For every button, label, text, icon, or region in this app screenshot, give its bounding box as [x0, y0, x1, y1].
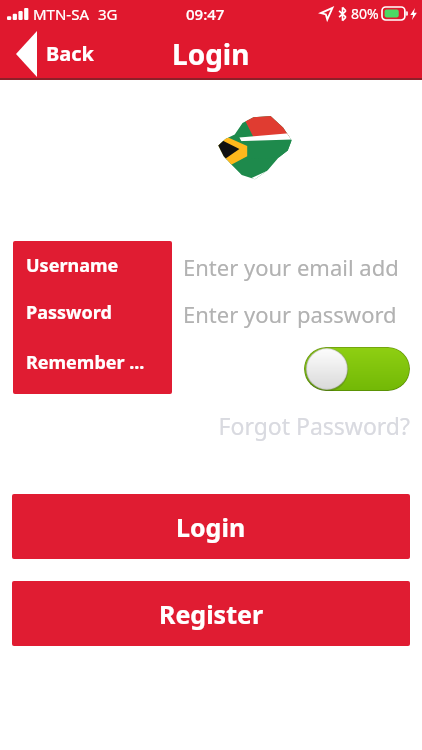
- button[interactable]: Remember me toggle: [304, 347, 410, 391]
- staticText: Login: [176, 510, 246, 544]
- button[interactable]: Login: [12, 494, 410, 559]
- button[interactable]: Enter your email add: [183, 252, 422, 282]
- button[interactable]: Forgot Password?: [200, 410, 410, 441]
- button[interactable]: Enter your password: [183, 299, 422, 329]
- staticText: Register: [159, 597, 264, 631]
- button[interactable]: Back: [0, 27, 108, 80]
- staticText: Username: [26, 253, 119, 278]
- staticText: Back: [46, 40, 94, 67]
- staticText: 09:47: [186, 4, 225, 24]
- staticText: 3G: [98, 4, 118, 24]
- staticText: Login: [172, 35, 250, 73]
- staticText: MTN-SA: [33, 4, 89, 24]
- staticText: Password: [26, 300, 112, 325]
- button[interactable]: Register: [12, 581, 410, 646]
- staticText: Remember ...: [26, 350, 145, 375]
- staticText: Forgot Password?: [200, 410, 410, 441]
- staticText: 80%: [351, 4, 379, 23]
